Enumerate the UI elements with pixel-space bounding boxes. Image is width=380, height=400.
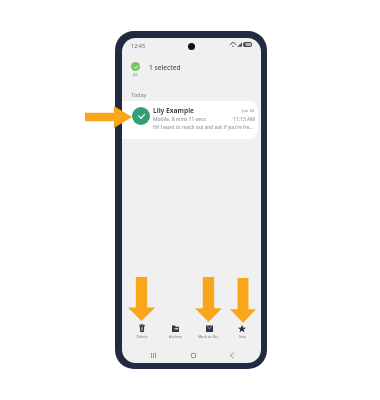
staticText: 1 selected: [149, 63, 181, 72]
staticText: 11:15 AM: [233, 116, 255, 123]
staticText: Star: [239, 334, 246, 339]
staticText: All: [133, 72, 138, 77]
button[interactable]: Mark as Re...: [195, 324, 223, 339]
button[interactable]: Delete: [128, 324, 156, 339]
staticText: Jun 24: [242, 108, 255, 114]
staticText: Delete: [136, 334, 148, 339]
button[interactable]: Archive: [161, 324, 189, 339]
button[interactable]: All: [128, 62, 143, 77]
button[interactable]: Recents: [147, 349, 159, 361]
button[interactable]: Home: [187, 349, 199, 361]
button[interactable]: Back: [226, 349, 238, 361]
staticText: Mark as Re...: [198, 334, 220, 339]
staticText: Hi! I want to reach out and ask if you'r…: [153, 124, 254, 131]
staticText: Today: [131, 91, 147, 98]
staticText: Mobile, 8 mins 11 secs: [153, 116, 206, 123]
button[interactable]: Star: [228, 324, 256, 339]
staticText: 12:45: [131, 42, 146, 49]
staticText: Lily Example: [153, 106, 195, 115]
staticText: 100: [245, 42, 251, 47]
button[interactable]: Lily Example: [122, 101, 258, 139]
staticText: Archive: [169, 334, 182, 339]
